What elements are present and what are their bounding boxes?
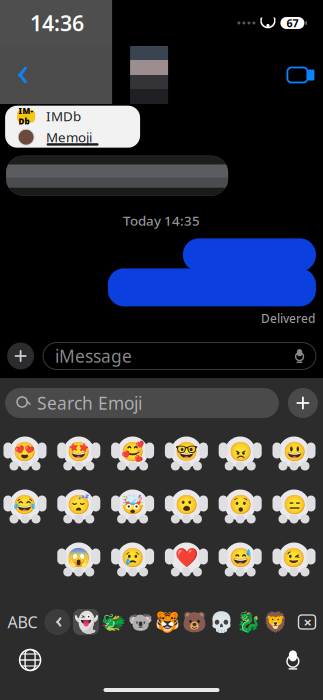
staticText: 😃: [282, 441, 305, 462]
button[interactable]: Dictation: [271, 642, 315, 678]
button[interactable]: Memoji sticker: [109, 484, 157, 528]
staticText: 👻: [73, 611, 98, 633]
button[interactable]: Memoji sticker: [270, 431, 318, 475]
staticText: 😴: [67, 494, 90, 515]
staticText: IMDb: [46, 107, 81, 125]
staticText: 14:36: [30, 9, 84, 37]
button[interactable]: Emoji category: [153, 608, 180, 636]
button[interactable]: Apps: [7, 342, 34, 369]
staticText: 🐻: [181, 611, 206, 633]
staticText: ABC: [7, 611, 37, 633]
button[interactable]: Memoji sticker: [109, 431, 157, 475]
staticText: 67: [286, 16, 298, 30]
staticText: ❤️: [175, 547, 198, 568]
button[interactable]: Ghost category: [72, 608, 99, 636]
staticText: 😠: [229, 441, 252, 462]
button[interactable]: Emoji category: [99, 608, 126, 636]
staticText: Memoji: [46, 128, 92, 146]
button[interactable]: Memoji sticker: [1, 484, 49, 528]
button[interactable]: Emoji category: [261, 608, 288, 636]
button[interactable]: Memoji sticker: [55, 537, 103, 581]
button[interactable]: Emoji category: [234, 608, 261, 636]
button[interactable]: Memoji sticker: [162, 484, 210, 528]
staticText: 😑: [282, 494, 305, 515]
button[interactable]: Delete: [288, 608, 320, 636]
staticText: 🥰: [121, 441, 144, 462]
button[interactable]: Memoji sticker: [270, 537, 318, 581]
staticText: 😉: [282, 547, 305, 568]
staticText: 🐉: [235, 611, 260, 633]
staticText: 😮: [175, 494, 198, 515]
button[interactable]: Memoji sticker: [55, 484, 103, 528]
staticText: 😯: [229, 494, 252, 515]
button[interactable]: Emoji category: [207, 608, 234, 636]
button[interactable]: FaceTime: [279, 53, 323, 97]
button[interactable]: Memoji sticker: [216, 537, 264, 581]
button[interactable]: Memoji sticker: [1, 431, 49, 475]
button[interactable]: Memoji sticker: [216, 484, 264, 528]
staticText: 🤓: [175, 441, 198, 462]
staticText: 💀: [208, 611, 233, 633]
button[interactable]: IMDb: [5, 106, 140, 127]
button[interactable]: Memoji sticker: [162, 431, 210, 475]
staticText: 😂: [13, 494, 36, 515]
staticText: Search Emoji: [37, 391, 142, 414]
button[interactable]: Previous: [42, 608, 72, 636]
staticText: Today 14:35: [123, 212, 200, 229]
button[interactable]: Back: [0, 53, 40, 97]
button[interactable]: ABC: [2, 608, 42, 636]
button[interactable]: Emoji category: [126, 608, 153, 636]
button[interactable]: Switch keyboard: [8, 642, 52, 678]
staticText: 😱: [67, 547, 90, 568]
staticText: Delivered: [261, 310, 315, 326]
button[interactable]: Memoji sticker: [162, 537, 210, 581]
staticText: 😍: [13, 441, 36, 462]
staticText: 🤩: [67, 441, 90, 462]
staticText: 🐨: [127, 611, 152, 633]
staticText: IMDb: [19, 106, 34, 127]
button[interactable]: Memoji sticker: [109, 537, 157, 581]
staticText: 🐲: [100, 611, 125, 633]
staticText: 🦁: [262, 611, 287, 633]
button[interactable]: Memoji: [5, 127, 140, 148]
button[interactable]: Emoji category: [180, 608, 207, 636]
staticText: 🤯: [121, 494, 144, 515]
button[interactable]: Memoji sticker: [270, 484, 318, 528]
staticText: ×: [303, 612, 311, 632]
button[interactable]: Add sticker: [288, 388, 318, 418]
staticText: iMessage: [55, 344, 132, 367]
button[interactable]: Memoji sticker: [55, 431, 103, 475]
staticText: 😢: [121, 547, 144, 568]
staticText: 😅: [229, 547, 252, 568]
button[interactable]: Memoji sticker: [216, 431, 264, 475]
staticText: 🐯: [154, 611, 179, 633]
